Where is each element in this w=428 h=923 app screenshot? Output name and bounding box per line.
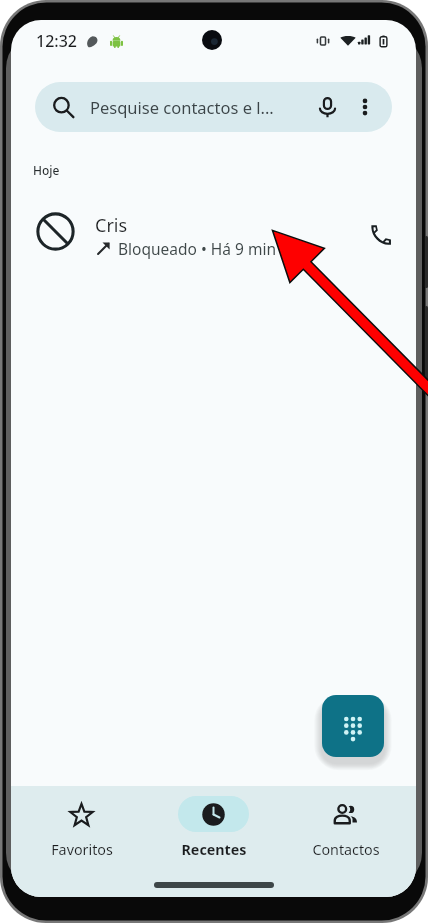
button[interactable]: Favoritos [20, 796, 143, 859]
button[interactable]: Ligar [355, 210, 403, 258]
button[interactable]: Recentes [152, 796, 275, 859]
button[interactable]: Pesquise contactos e l... [35, 82, 392, 132]
button[interactable]: Pesquisa por voz [317, 97, 338, 118]
button[interactable]: Cris [11, 196, 416, 272]
staticText: Contactos [312, 840, 380, 859]
button[interactable]: Contactos [284, 796, 407, 859]
button[interactable]: Mais opções [356, 98, 374, 116]
staticText: Favoritos [51, 840, 113, 859]
staticText: Hoje [33, 162, 60, 178]
button[interactable]: Teclado [322, 695, 384, 757]
staticText: Cris [95, 213, 128, 238]
staticText: Pesquise contactos e l... [90, 96, 317, 118]
staticText: 12:32 [36, 30, 77, 52]
staticText: Bloqueado • Há 9 min [118, 238, 276, 259]
staticText: Recentes [181, 840, 247, 859]
